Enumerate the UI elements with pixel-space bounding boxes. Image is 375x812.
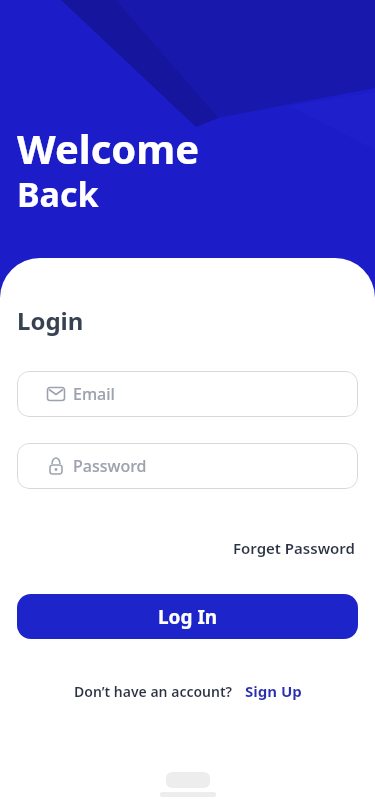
button[interactable]: Sign Up	[245, 681, 302, 701]
staticText: Welcome	[17, 121, 200, 175]
button[interactable]: Forget Password	[233, 538, 355, 558]
staticText: Don’t have an account?	[74, 682, 233, 701]
button[interactable]: Log In	[17, 594, 358, 639]
staticText: Log In	[158, 604, 218, 630]
button[interactable]: Password	[17, 443, 358, 489]
button[interactable]: Email	[17, 371, 358, 417]
staticText: Back	[17, 171, 99, 217]
staticText: Email	[73, 383, 115, 405]
staticText: Login	[17, 304, 84, 337]
staticText: Password	[73, 455, 147, 477]
